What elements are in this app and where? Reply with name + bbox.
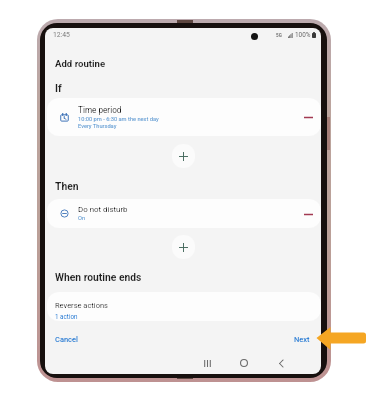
- staticText: 100%: [295, 31, 311, 39]
- staticText: Next: [294, 335, 310, 344]
- button[interactable]: Remove: [300, 109, 316, 125]
- button[interactable]: Time period: [47, 98, 321, 136]
- staticText: 10:00 pm - 6:30 am the next day: [78, 116, 159, 123]
- staticText: Cancel: [55, 335, 78, 344]
- staticText: Every Thursday: [78, 123, 117, 130]
- staticText: Time period: [78, 105, 122, 115]
- button[interactable]: Add: [172, 144, 195, 168]
- staticText: 12:45: [53, 31, 70, 39]
- button[interactable]: Recents: [197, 353, 217, 373]
- staticText: Do not disturb: [78, 205, 128, 214]
- staticText: Then: [55, 180, 79, 192]
- button[interactable]: Cancel: [49, 330, 84, 349]
- staticText: 5G: [276, 33, 282, 38]
- staticText: When routine ends: [55, 271, 142, 283]
- staticText: On: [78, 215, 86, 222]
- button[interactable]: Home: [234, 353, 254, 373]
- button[interactable]: Do not disturb: [47, 199, 321, 228]
- staticText: Add routine: [55, 58, 106, 69]
- staticText: Reverse actions: [55, 301, 108, 310]
- button[interactable]: Remove: [300, 206, 316, 222]
- button[interactable]: Back: [271, 353, 291, 373]
- staticText: 1 action: [55, 313, 78, 320]
- button[interactable]: Reverse actions: [47, 292, 321, 321]
- button[interactable]: Add: [172, 235, 195, 259]
- button[interactable]: Next: [288, 330, 316, 349]
- staticText: If: [55, 82, 62, 94]
